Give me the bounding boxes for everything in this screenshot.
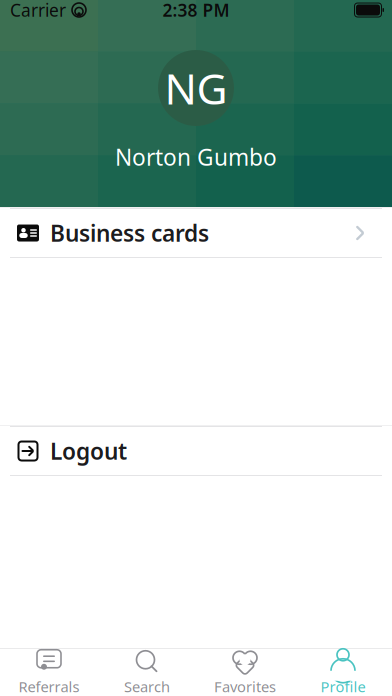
staticText: Carrier — [10, 0, 66, 21]
staticText: NG — [164, 60, 227, 116]
staticText: Profile — [320, 677, 365, 696]
staticText: 2:38 PM — [162, 0, 229, 21]
staticText: Favorites — [214, 677, 276, 696]
staticText: Referrals — [18, 677, 79, 696]
button[interactable]: Referrals — [0, 649, 98, 696]
staticText: Business cards — [50, 218, 209, 248]
staticText: Search — [124, 677, 170, 696]
staticText: Logout — [50, 436, 127, 466]
button[interactable]: Search — [98, 649, 196, 696]
button[interactable]: Business cards — [0, 209, 392, 257]
button[interactable]: Favorites — [196, 649, 294, 696]
button[interactable]: Logout — [0, 427, 392, 475]
button[interactable]: Profile — [294, 649, 392, 696]
staticText: Norton Gumbo — [115, 142, 277, 172]
